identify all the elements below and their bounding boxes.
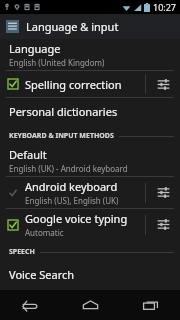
staticText: English (UK) - Android keyboard <box>9 163 128 174</box>
button[interactable]: Settings for Android keyboard <box>146 177 180 208</box>
staticText: SPEECH <box>9 247 35 257</box>
staticText: Google voice typing <box>25 211 128 226</box>
button[interactable]: Spelling correction <box>0 71 145 97</box>
staticText: 10:27 <box>153 1 177 13</box>
button[interactable]: Voice Search <box>0 261 180 287</box>
staticText: Language & input <box>26 19 119 34</box>
button[interactable]: Recent apps <box>120 290 180 320</box>
staticText: Default <box>9 147 47 162</box>
button[interactable]: Language & input <box>0 14 180 39</box>
button[interactable]: Back <box>0 290 60 320</box>
staticText: Voice Search <box>9 267 75 282</box>
button[interactable]: Default <box>0 145 180 176</box>
button[interactable]: Home <box>60 290 120 320</box>
button[interactable]: Google voice typing <box>0 209 145 240</box>
staticText: Automatic <box>25 227 64 238</box>
staticText: Spelling correction <box>25 77 122 92</box>
staticText: English (United Kingdom) <box>9 57 105 68</box>
staticText: Personal dictionaries <box>9 104 118 119</box>
button[interactable]: Android keyboard <box>0 177 145 208</box>
staticText: Android keyboard <box>25 179 118 194</box>
button[interactable]: Settings for Spelling correction <box>146 71 180 97</box>
button[interactable]: Language <box>0 39 180 70</box>
staticText: KEYBOARD & INPUT METHODS <box>9 131 114 141</box>
button[interactable]: Settings for Google voice typing <box>146 209 180 240</box>
staticText: English (US), English (UK) <box>25 195 119 206</box>
button[interactable]: Personal dictionaries <box>0 98 180 124</box>
staticText: Language <box>9 41 61 56</box>
